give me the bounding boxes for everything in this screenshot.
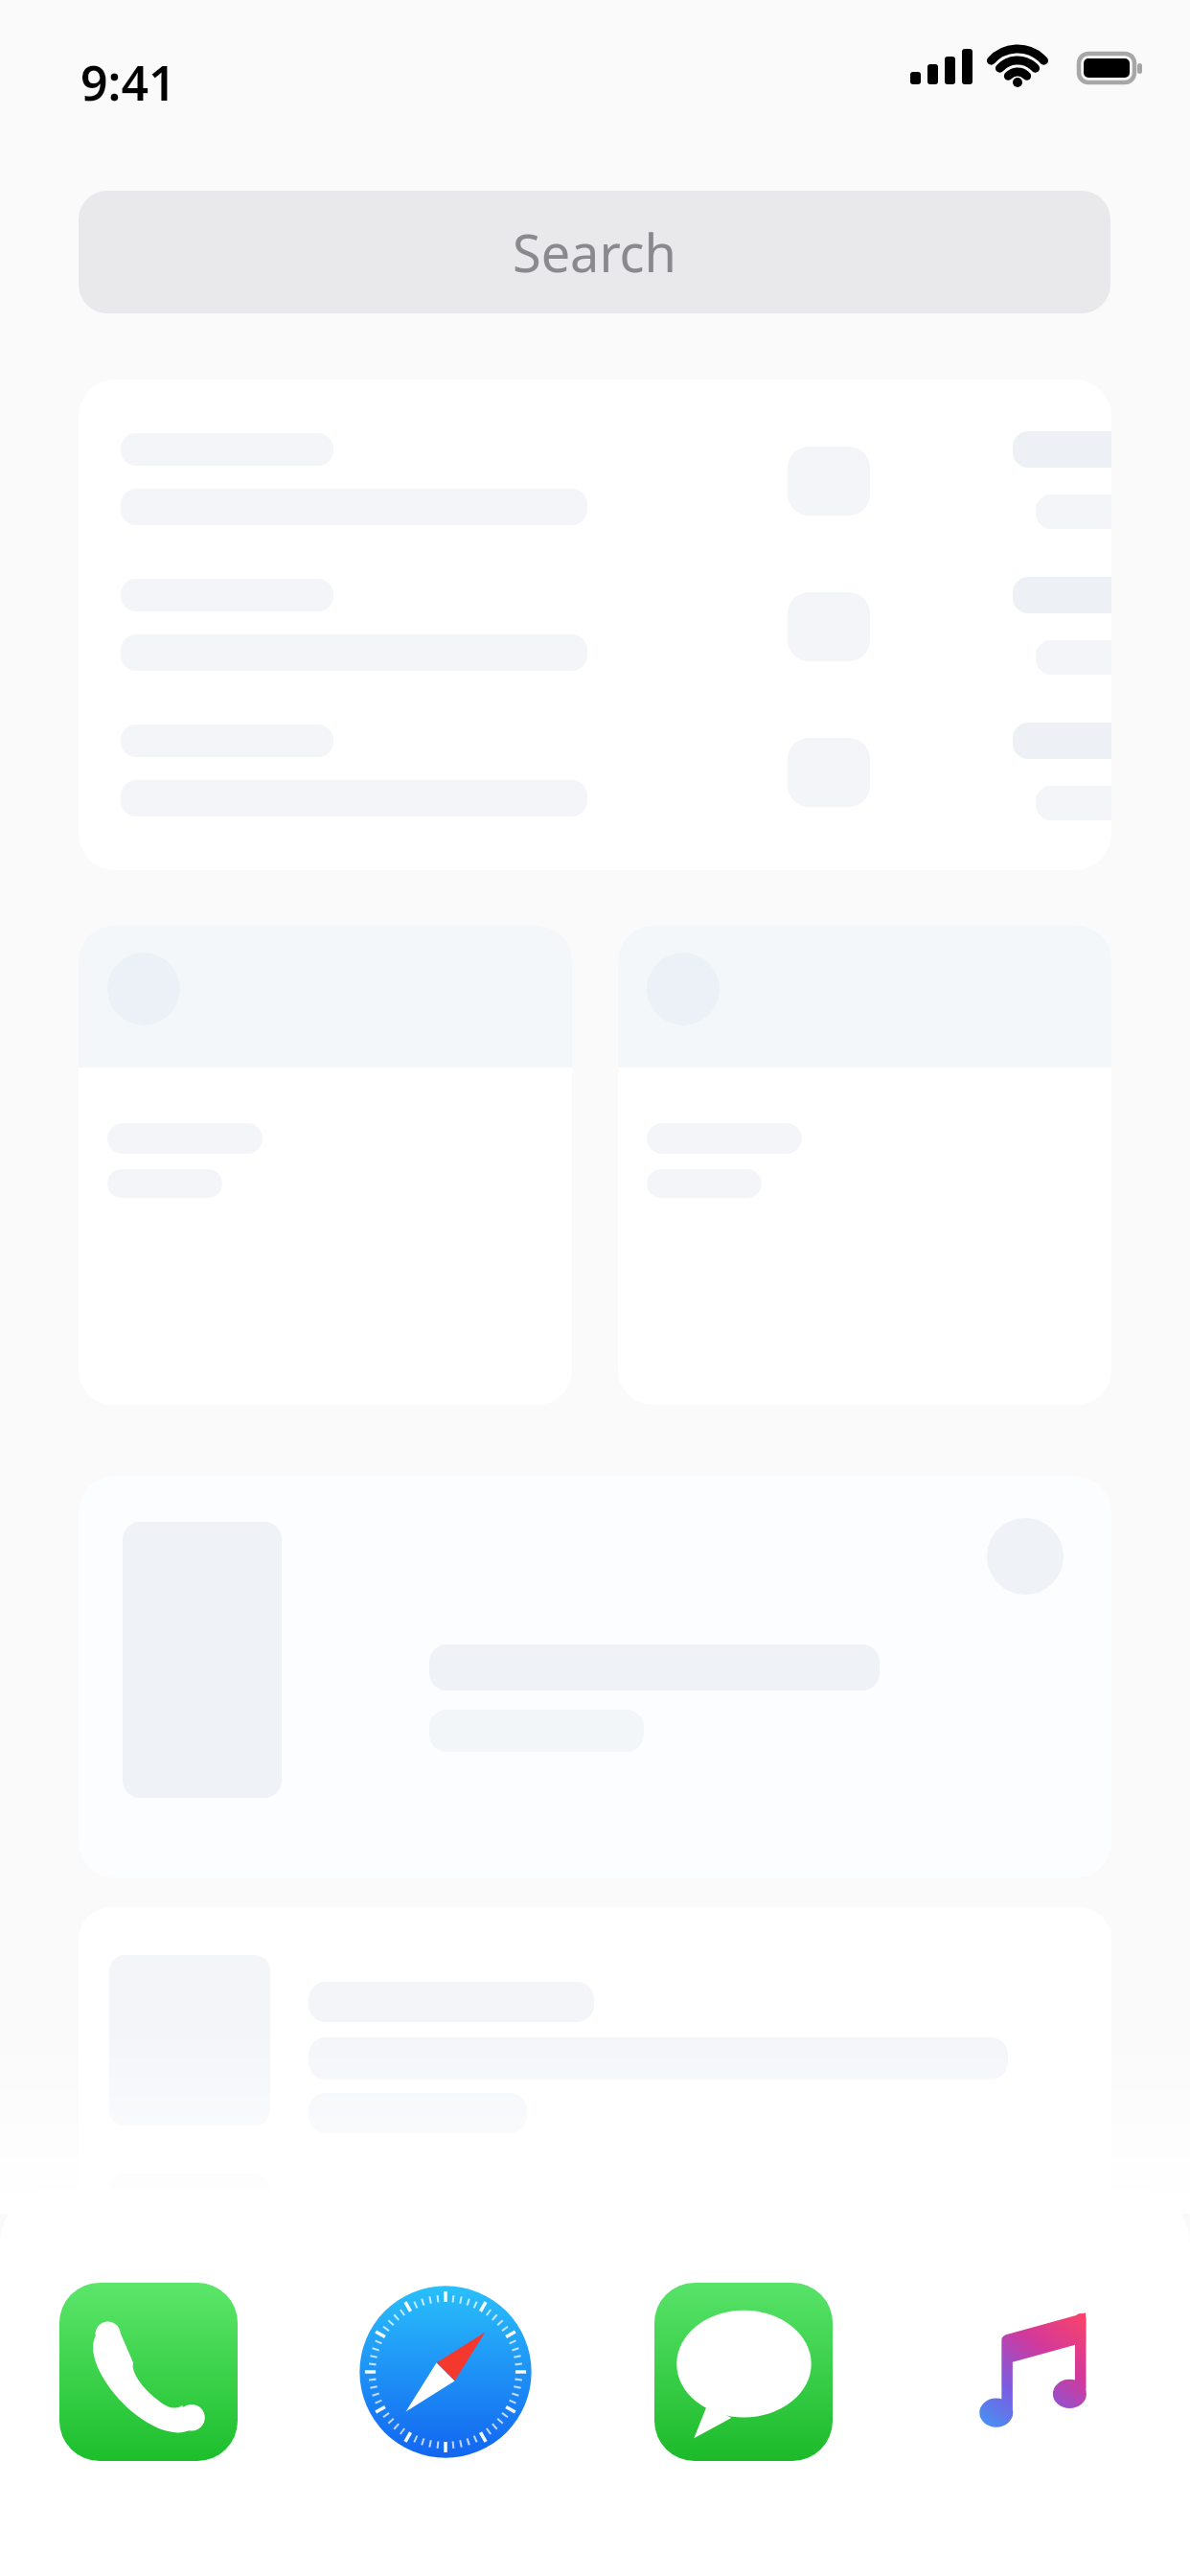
- button[interactable]: [79, 379, 1111, 870]
- button[interactable]: [79, 1907, 1111, 2290]
- button[interactable]: Safari: [297, 2276, 594, 2468]
- staticText: Search: [513, 217, 676, 287]
- button[interactable]: Phone: [0, 2276, 297, 2468]
- button[interactable]: Messages: [594, 2276, 892, 2468]
- button[interactable]: [79, 926, 572, 1405]
- button[interactable]: [79, 1476, 1111, 1878]
- staticText: 9:41: [80, 50, 176, 115]
- button[interactable]: Search: [79, 191, 1110, 313]
- button[interactable]: Music: [892, 2276, 1190, 2468]
- button[interactable]: [618, 926, 1111, 1405]
